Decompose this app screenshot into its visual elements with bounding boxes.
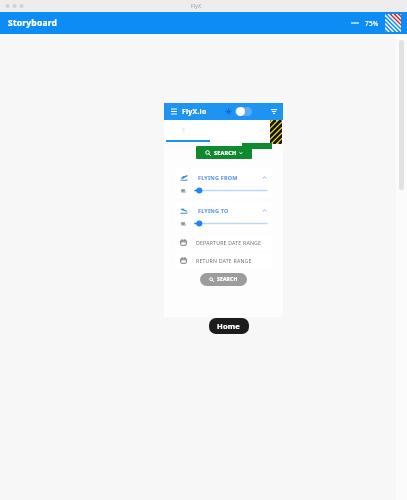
- staticText: RETURN DATE RANGE: [196, 257, 252, 264]
- button[interactable]: Theme toggle: [235, 107, 252, 116]
- staticText: ··: [261, 127, 265, 134]
- staticText: DEPARTURE DATE RANGE: [196, 239, 262, 246]
- button[interactable]: RETURN DATE RANGE: [175, 253, 272, 268]
- button[interactable]: FLYING FROM: [175, 169, 272, 198]
- staticText: FLYING FROM: [198, 174, 238, 181]
- button[interactable]: FLYING TO: [175, 202, 272, 231]
- staticText: FLYING TO: [198, 207, 229, 214]
- button[interactable]: DEPARTURE DATE RANGE: [175, 235, 272, 250]
- button[interactable]: $: [164, 120, 283, 140]
- button[interactable]: Zoom out: [349, 17, 361, 29]
- staticText: SEARCH: [214, 149, 237, 156]
- staticText: 75%: [365, 19, 379, 28]
- button[interactable]: SEARCH: [196, 146, 252, 159]
- button[interactable]: Light mode: [224, 107, 233, 116]
- button[interactable]: Filter: [269, 107, 278, 116]
- staticText: FlyX.io: [182, 107, 207, 117]
- button[interactable]: Home: [209, 318, 249, 334]
- button[interactable]: Menu: [169, 107, 178, 116]
- staticText: SEARCH: [217, 276, 238, 283]
- staticText: $: [182, 127, 186, 134]
- staticText: FlyX: [191, 3, 202, 10]
- staticText: Storyboard: [8, 17, 58, 29]
- button[interactable]: SEARCH: [200, 273, 247, 286]
- staticText: Home: [217, 321, 241, 331]
